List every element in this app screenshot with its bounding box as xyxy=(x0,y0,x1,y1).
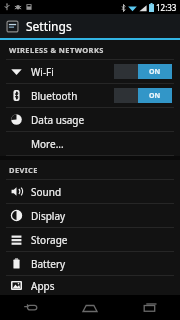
button[interactable]: Home xyxy=(60,295,120,320)
button[interactable]: Storage xyxy=(0,228,180,251)
button[interactable]: Back xyxy=(0,295,60,320)
button[interactable]: Wi-Fi xyxy=(0,60,180,83)
button[interactable]: Sound xyxy=(0,180,180,203)
button[interactable]: Bluetooth xyxy=(0,84,180,107)
staticText: Sound xyxy=(31,185,172,199)
staticText: Data usage xyxy=(31,113,172,127)
button[interactable]: ON xyxy=(114,88,172,103)
button[interactable]: Display xyxy=(0,204,180,227)
button[interactable]: Data usage xyxy=(0,108,180,131)
button[interactable]: More... xyxy=(0,132,180,155)
staticText: Settings xyxy=(26,18,72,34)
staticText: Wi-Fi xyxy=(31,65,114,79)
staticText: More... xyxy=(31,137,172,151)
staticText: Storage xyxy=(31,233,172,247)
staticText: Bluetooth xyxy=(31,89,114,103)
button[interactable]: Battery xyxy=(0,252,180,275)
button[interactable]: Settings xyxy=(0,14,180,38)
staticText: Apps xyxy=(31,279,172,293)
button[interactable]: ON xyxy=(114,64,172,79)
staticText: ON xyxy=(149,91,161,101)
staticText: WIRELESS & NETWORKS xyxy=(9,45,104,55)
staticText: Display xyxy=(31,209,172,223)
staticText: DEVICE xyxy=(9,165,38,175)
staticText: ON xyxy=(149,67,161,77)
button[interactable]: Apps xyxy=(0,276,180,295)
button[interactable]: Recent apps xyxy=(120,295,180,320)
staticText: Battery xyxy=(31,257,172,271)
staticText: 12:33 xyxy=(156,2,177,13)
